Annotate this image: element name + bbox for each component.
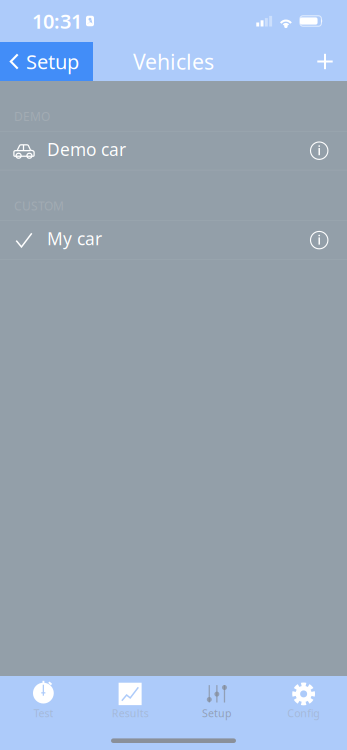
button[interactable]: Add vehicle	[303, 42, 344, 81]
button[interactable]: Results	[87, 676, 174, 722]
staticText: Vehicles	[133, 47, 214, 76]
button[interactable]: Demo car	[0, 131, 347, 170]
staticText: My car	[47, 227, 102, 250]
staticText: Demo car	[47, 138, 126, 161]
button[interactable]: Config	[260, 676, 347, 722]
staticText: Config	[287, 706, 320, 720]
staticText: Results	[112, 706, 149, 720]
staticText: Test	[33, 706, 53, 720]
button[interactable]: About Demo car	[296, 131, 347, 170]
button[interactable]: Setup	[173, 676, 260, 722]
staticText: Setup	[26, 48, 79, 75]
button[interactable]: My car	[0, 220, 347, 260]
staticText: CUSTOM	[14, 198, 64, 214]
staticText: DEMO	[14, 108, 50, 124]
staticText: Setup	[202, 706, 232, 720]
button[interactable]: Test	[0, 676, 87, 722]
button[interactable]: About My car	[296, 221, 347, 259]
button[interactable]: Setup	[0, 42, 93, 81]
staticText: 10:31	[32, 8, 82, 34]
